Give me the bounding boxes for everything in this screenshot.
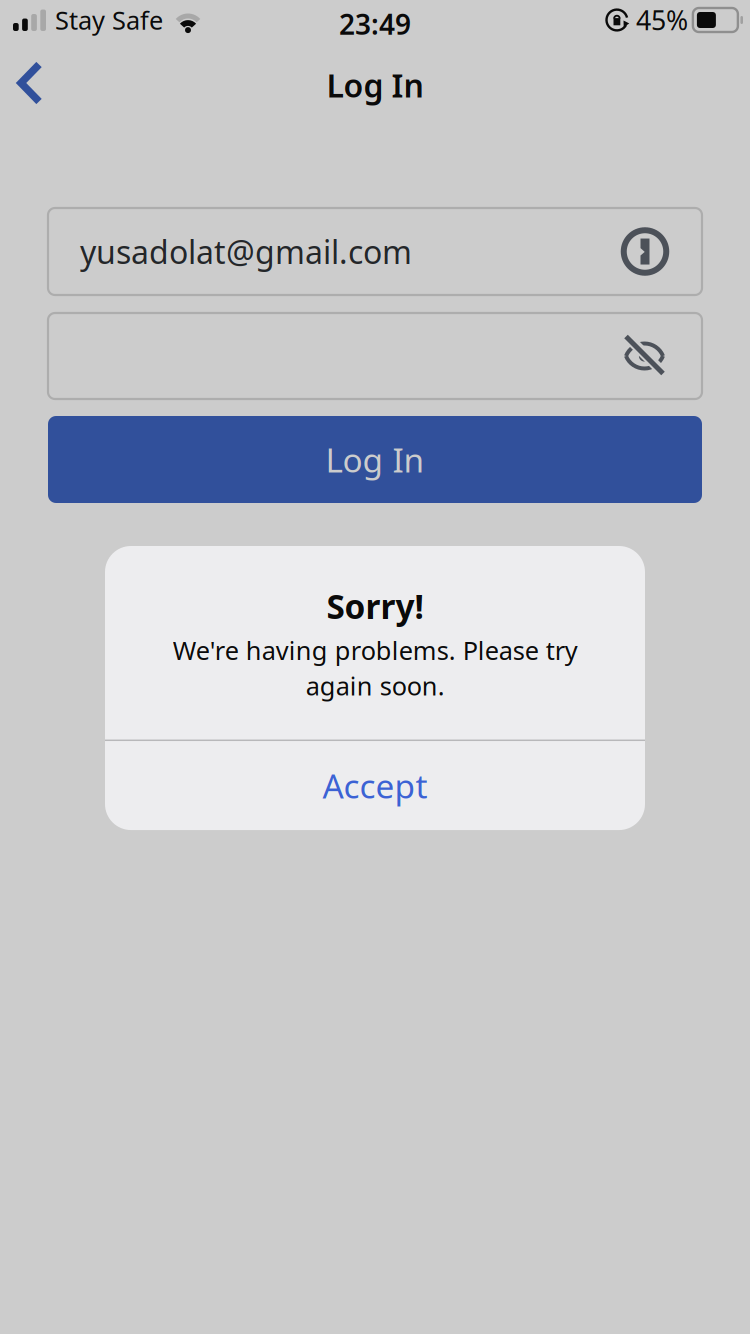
staticText: Accept [322, 763, 427, 808]
staticText: Sorry! [326, 584, 423, 628]
staticText: Log In [326, 64, 423, 106]
button[interactable]: yusadolat@gmail.com [48, 208, 702, 295]
button[interactable]: Back [0, 50, 65, 119]
staticText: yusadolat@gmail.com [80, 230, 412, 273]
staticText: 45% [636, 2, 688, 38]
button[interactable]: Accept [105, 741, 645, 830]
staticText: 23:49 [339, 5, 411, 43]
staticText: We're having problems. Please try again … [172, 633, 577, 703]
button[interactable]: Log In [48, 416, 702, 503]
button[interactable]: Password [48, 313, 702, 399]
staticText: Log In [325, 437, 424, 482]
staticText: Stay Safe [55, 3, 163, 37]
